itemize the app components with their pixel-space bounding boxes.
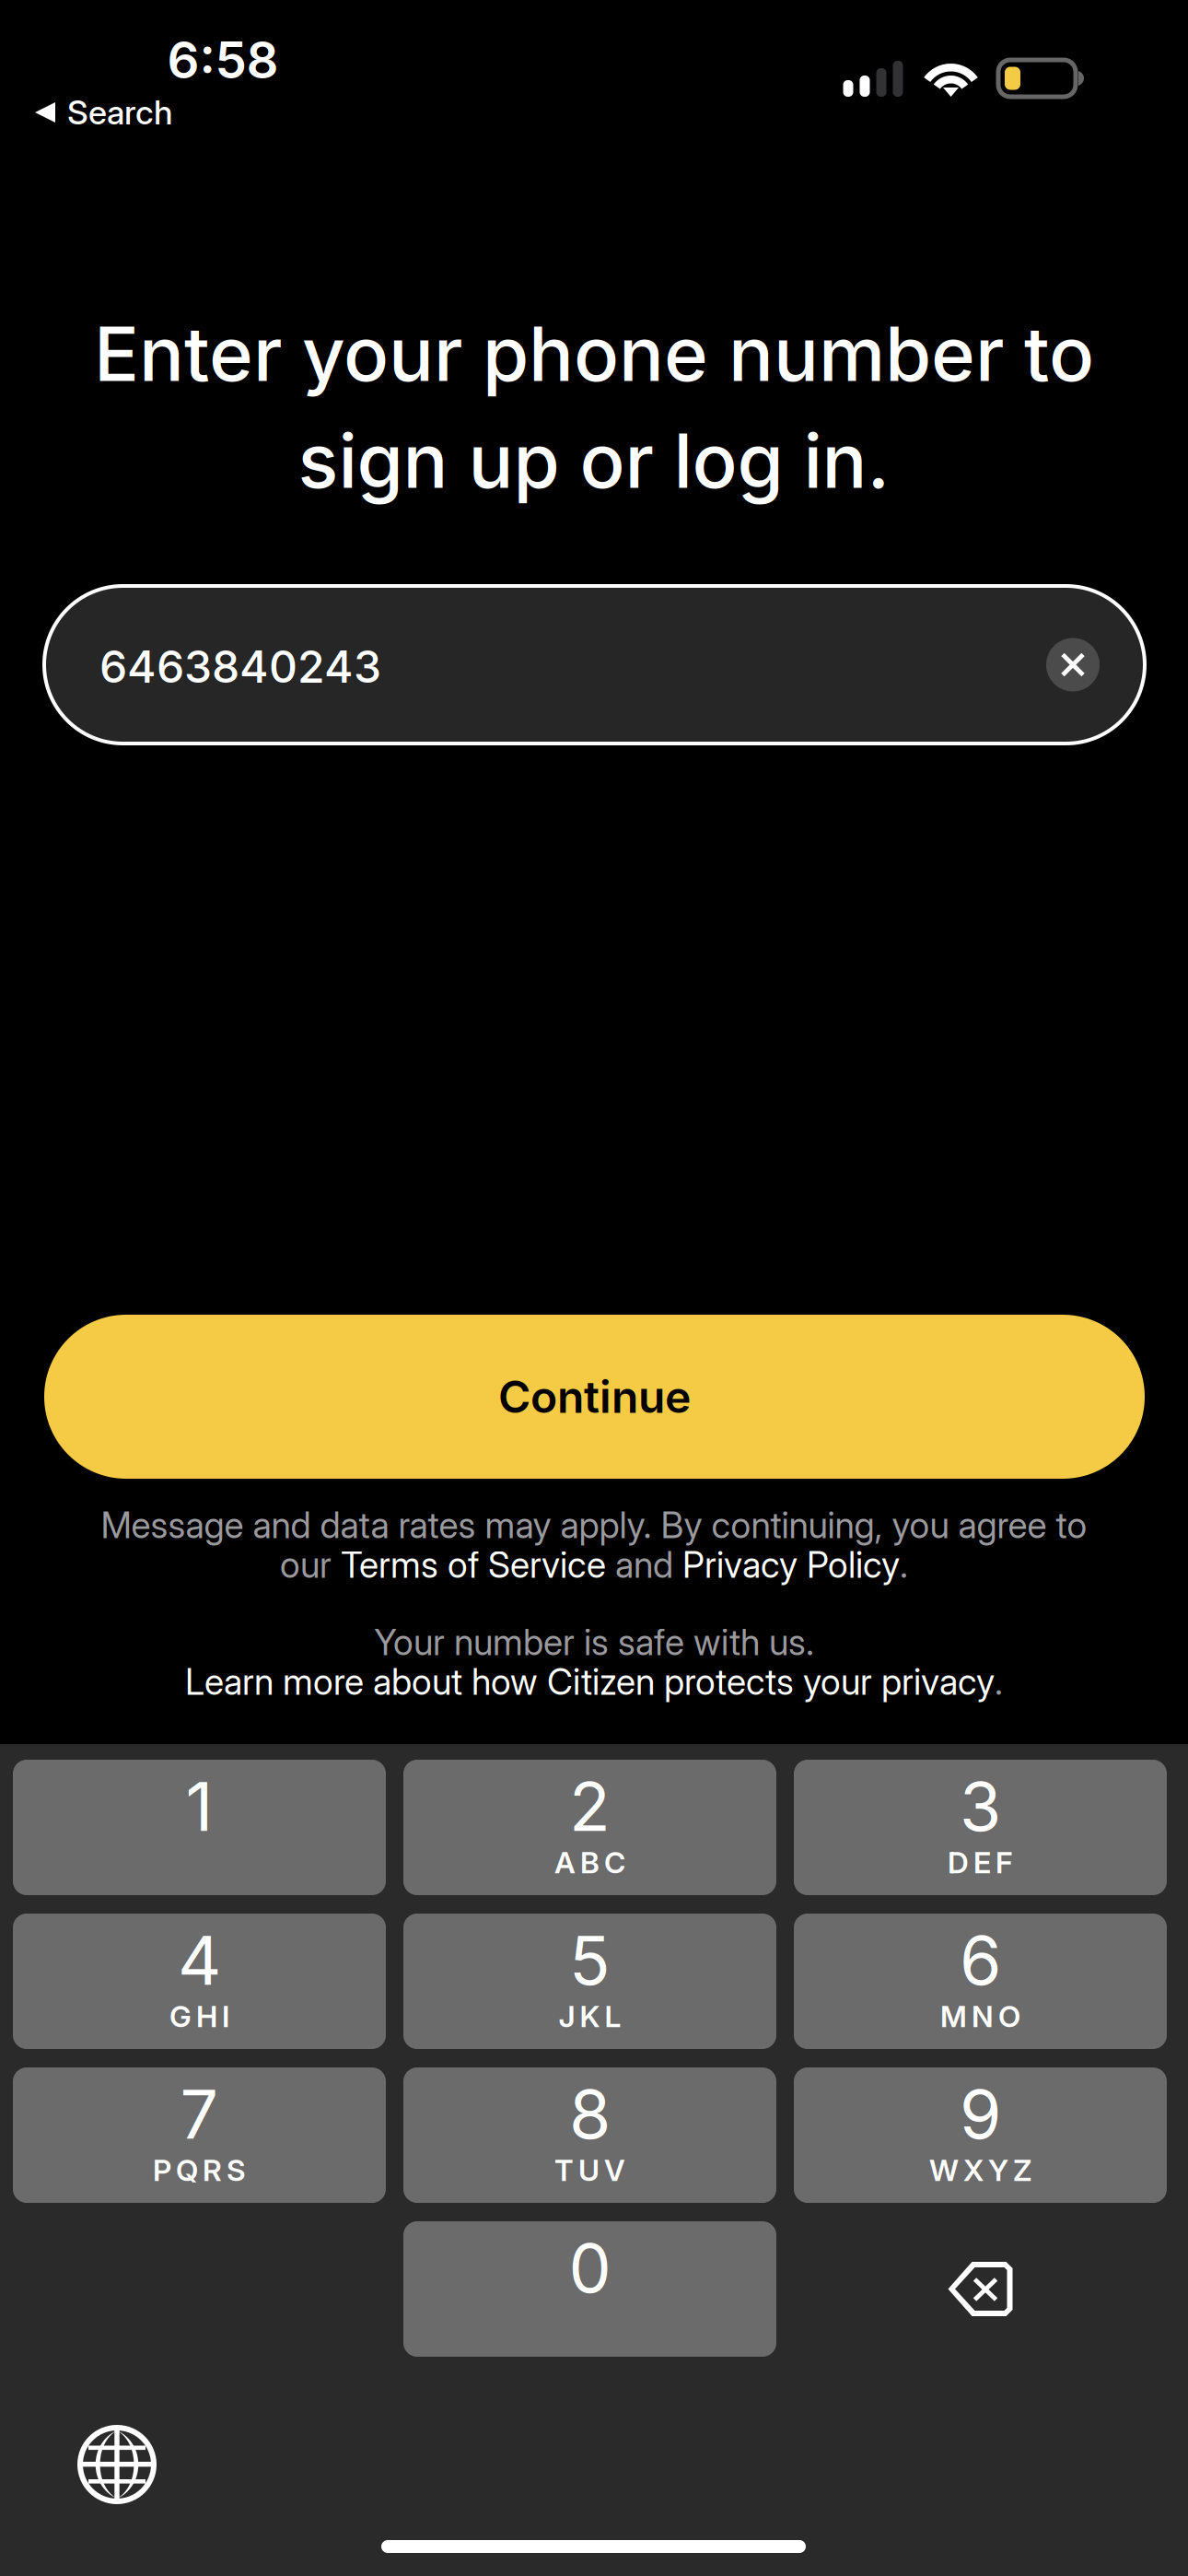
staticText: . xyxy=(900,1543,908,1586)
staticText: 0 xyxy=(569,2227,611,2309)
button[interactable]: Next keyboard xyxy=(80,2428,154,2501)
button[interactable]: 2 xyxy=(403,1760,776,1895)
staticText: Learn more about how Citizen protects yo… xyxy=(185,1660,995,1703)
staticText: A B C xyxy=(554,1845,625,1880)
staticText: P Q R S xyxy=(153,2152,246,2188)
staticText: Terms of Service xyxy=(341,1543,606,1586)
button[interactable]: 8 xyxy=(403,2067,776,2203)
staticText: . xyxy=(995,1660,1003,1703)
staticText: 6 xyxy=(960,1919,1001,2001)
button[interactable]: 4 xyxy=(13,1914,386,2049)
staticText: Search xyxy=(67,92,173,132)
staticText: 1 xyxy=(186,1765,213,1847)
staticText: T U V xyxy=(554,2152,625,2188)
button[interactable]: 0 xyxy=(403,2221,776,2357)
staticText: 6:58 xyxy=(167,29,279,90)
staticText: sign up or log in. xyxy=(298,415,890,506)
staticText: G H I xyxy=(169,1998,229,2034)
button[interactable]: 9 xyxy=(794,2067,1167,2203)
staticText: our xyxy=(280,1543,341,1586)
staticText: M N O xyxy=(940,1998,1020,2034)
staticText: 6463840243 xyxy=(99,640,381,693)
staticText: 3 xyxy=(960,1765,1001,1847)
staticText: Privacy Policy xyxy=(682,1543,900,1586)
button[interactable]: Clear text xyxy=(1031,623,1114,706)
staticText: 9 xyxy=(960,2073,1001,2155)
button[interactable]: 3 xyxy=(794,1760,1167,1895)
button[interactable]: 5 xyxy=(403,1914,776,2049)
staticText: and xyxy=(606,1543,682,1586)
staticText: 5 xyxy=(569,1919,611,2001)
staticText: Enter your phone number to xyxy=(94,308,1094,399)
button[interactable]: Continue xyxy=(44,1315,1145,1479)
button[interactable]: 7 xyxy=(13,2067,386,2203)
staticText: 8 xyxy=(569,2073,611,2155)
staticText: Your number is safe with us. xyxy=(374,1621,814,1664)
staticText: Message and data rates may apply. By con… xyxy=(101,1504,1087,1547)
staticText: J K L xyxy=(559,1998,621,2034)
staticText: 4 xyxy=(178,1919,221,2001)
staticText: 7 xyxy=(180,2073,219,2155)
button[interactable]: Search xyxy=(35,87,228,138)
button[interactable]: 1 xyxy=(13,1760,386,1895)
staticText: Continue xyxy=(498,1370,691,1424)
staticText: W X Y Z xyxy=(929,2152,1031,2188)
button[interactable]: Delete xyxy=(794,2221,1167,2357)
staticText: D E F xyxy=(948,1845,1013,1880)
staticText: 2 xyxy=(569,1765,611,1847)
button[interactable]: 6 xyxy=(794,1914,1167,2049)
